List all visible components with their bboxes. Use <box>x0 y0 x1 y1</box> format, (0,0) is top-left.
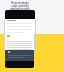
button[interactable] <box>7 19 33 34</box>
staticText: How startups scale content marketing wit… <box>9 1 31 13</box>
button[interactable]: Article hero image <box>5 10 35 19</box>
button[interactable] <box>5 61 34 68</box>
button[interactable] <box>5 50 34 61</box>
button[interactable] <box>7 34 32 50</box>
